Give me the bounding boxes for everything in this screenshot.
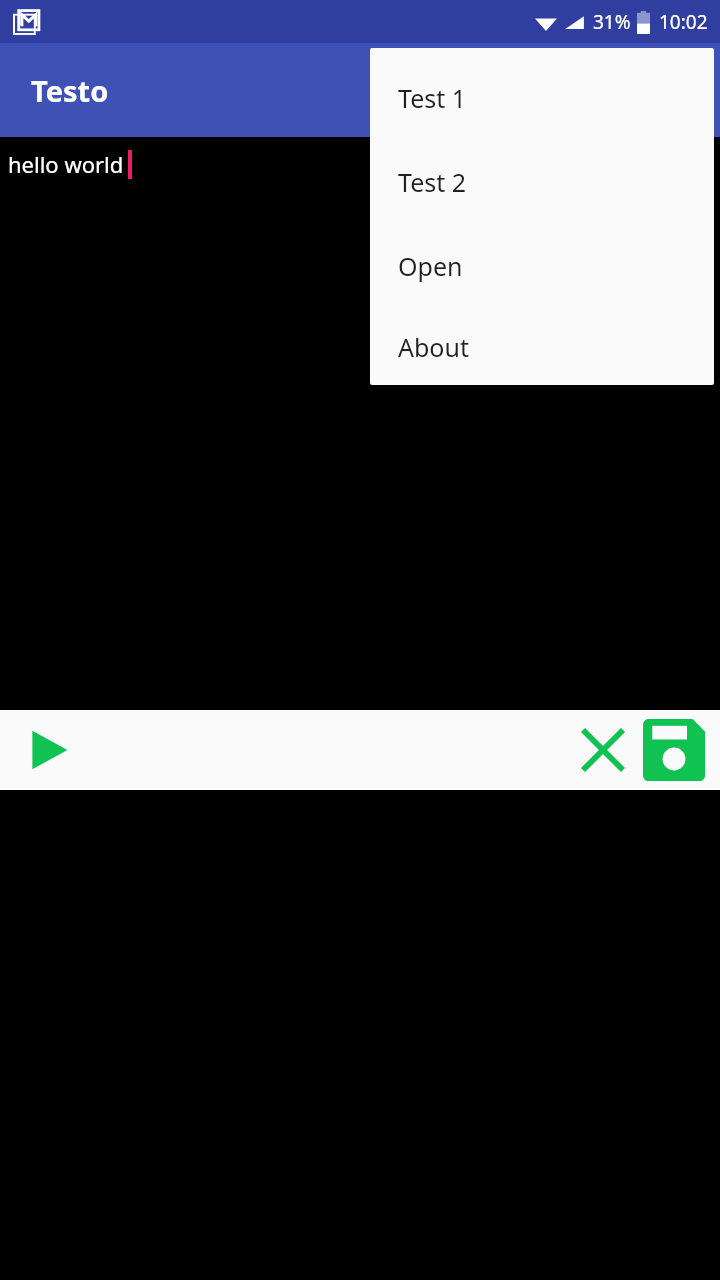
button[interactable]: Save: [638, 714, 710, 786]
button[interactable]: Test 1: [370, 56, 714, 140]
staticText: Test 2: [398, 165, 467, 199]
button[interactable]: Open: [370, 224, 714, 308]
staticText: 31%: [593, 9, 631, 35]
staticText: hello world: [8, 149, 124, 179]
staticText: Test 1: [398, 81, 467, 115]
button[interactable]: Test 2: [370, 140, 714, 224]
staticText: Testo: [31, 71, 109, 110]
staticText: Open: [398, 249, 463, 283]
staticText: 10:02: [659, 9, 708, 35]
button[interactable]: Run: [16, 718, 80, 782]
button[interactable]: About: [370, 308, 714, 385]
button[interactable]: Close: [568, 715, 638, 785]
staticText: About: [398, 330, 469, 364]
